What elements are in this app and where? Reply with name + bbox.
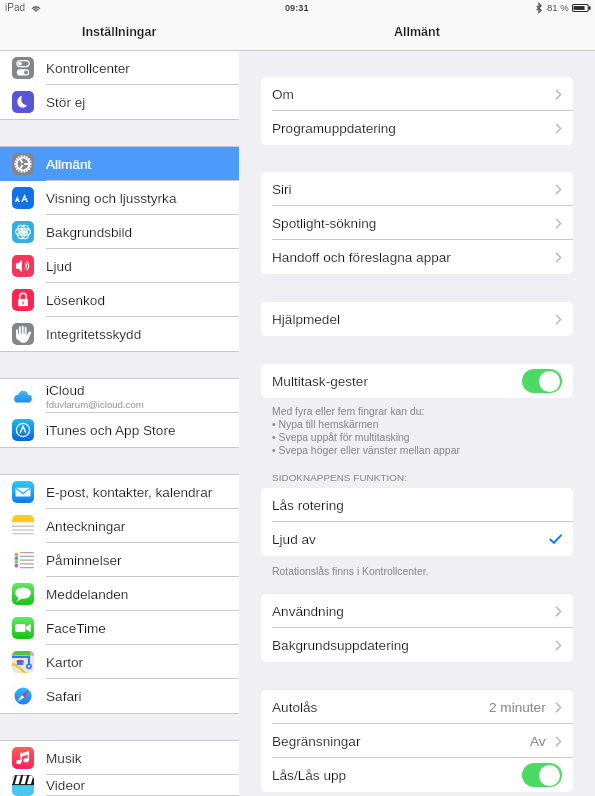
staticText: 2 minuter bbox=[489, 700, 546, 715]
staticText: Anteckningar bbox=[46, 519, 126, 534]
staticText: Stör ej bbox=[46, 95, 86, 110]
button[interactable]: Allmänt bbox=[0, 147, 239, 181]
staticText: Hjälpmedel bbox=[272, 312, 341, 327]
staticText: Lås rotering bbox=[272, 498, 344, 513]
button[interactable]: Påminnelser bbox=[0, 543, 239, 577]
button[interactable]: iCloud bbox=[0, 379, 239, 413]
staticText: Autolås bbox=[272, 700, 318, 715]
button[interactable]: Lås/Lås upp bbox=[261, 758, 573, 792]
button[interactable]: Siri bbox=[261, 172, 573, 206]
button[interactable]: Videor bbox=[0, 775, 239, 796]
staticText: Påminnelser bbox=[46, 553, 122, 568]
button[interactable]: Kontrollcenter bbox=[0, 51, 239, 85]
staticText: Med fyra eller fem fingrar kan du: bbox=[272, 406, 425, 418]
button[interactable]: Anteckningar bbox=[0, 509, 239, 543]
staticText: Lås/Lås upp bbox=[272, 768, 347, 783]
staticText: iPad bbox=[5, 2, 26, 13]
staticText: Programuppdatering bbox=[272, 121, 396, 136]
staticText: Inställningar bbox=[82, 25, 157, 39]
staticText: Allmänt bbox=[46, 157, 92, 172]
staticText: • Svepa uppåt för multitasking bbox=[272, 432, 410, 444]
staticText: Musik bbox=[46, 751, 82, 766]
staticText: Av bbox=[530, 734, 546, 749]
button[interactable]: Multitask-gester bbox=[261, 364, 573, 398]
button[interactable]: iTunes och App Store bbox=[0, 413, 239, 447]
button[interactable]: Kartor bbox=[0, 645, 239, 679]
staticText: SIDOKNAPPENS FUNKTION: bbox=[272, 472, 408, 483]
staticText: Bakgrundsbild bbox=[46, 225, 133, 240]
staticText: • Nypa till hemskärmen bbox=[272, 419, 379, 431]
button[interactable]: Användning bbox=[261, 594, 573, 628]
button[interactable]: Programuppdatering bbox=[261, 111, 573, 145]
staticText: Siri bbox=[272, 182, 292, 197]
button[interactable]: Lösenkod bbox=[0, 283, 239, 317]
staticText: 81 % bbox=[547, 2, 569, 13]
staticText: Kontrollcenter bbox=[46, 61, 130, 76]
button[interactable]: Safari bbox=[0, 679, 239, 713]
button[interactable]: E-post, kontakter, kalendrar bbox=[0, 475, 239, 509]
button[interactable]: Meddelanden bbox=[0, 577, 239, 611]
button[interactable]: Ljud av bbox=[261, 522, 573, 556]
button[interactable]: Bakgrundsbild bbox=[0, 215, 239, 249]
staticText: iCloud bbox=[46, 383, 85, 398]
button[interactable]: Lås/Lås upp bbox=[522, 763, 562, 787]
staticText: Om bbox=[272, 87, 294, 102]
staticText: iTunes och App Store bbox=[46, 423, 176, 438]
button[interactable]: Autolås bbox=[261, 690, 573, 724]
button[interactable]: Lås rotering bbox=[261, 488, 573, 522]
staticText: Integritetsskydd bbox=[46, 327, 142, 342]
staticText: Allmänt bbox=[394, 25, 440, 39]
staticText: Begränsningar bbox=[272, 734, 361, 749]
staticText: Visning och ljusstyrka bbox=[46, 191, 177, 206]
staticText: Lösenkod bbox=[46, 293, 105, 308]
staticText: Ljud av bbox=[272, 532, 316, 547]
button[interactable]: Bakgrundsuppdatering bbox=[261, 628, 573, 662]
staticText: FaceTime bbox=[46, 621, 106, 636]
staticText: Ljud bbox=[46, 259, 72, 274]
button[interactable]: Spotlight-sökning bbox=[261, 206, 573, 240]
button[interactable]: FaceTime bbox=[0, 611, 239, 645]
staticText: Kartor bbox=[46, 655, 84, 670]
staticText: • Svepa höger eller vänster mellan appar bbox=[272, 445, 460, 457]
button[interactable]: Om bbox=[261, 77, 573, 111]
staticText: E-post, kontakter, kalendrar bbox=[46, 485, 213, 500]
button[interactable]: Ljud bbox=[0, 249, 239, 283]
staticText: Multitask-gester bbox=[272, 374, 368, 389]
staticText: 09:31 bbox=[285, 3, 309, 13]
button[interactable]: Stör ej bbox=[0, 85, 239, 119]
staticText: Safari bbox=[46, 689, 82, 704]
button[interactable]: Integritetsskydd bbox=[0, 317, 239, 351]
button[interactable]: Begränsningar bbox=[261, 724, 573, 758]
staticText: Handoff och föreslagna appar bbox=[272, 250, 451, 265]
staticText: Videor bbox=[46, 778, 86, 793]
staticText: Meddelanden bbox=[46, 587, 129, 602]
staticText: Spotlight-sökning bbox=[272, 216, 377, 231]
staticText: Rotationslås finns i Kontrollcenter. bbox=[272, 566, 429, 578]
staticText: fduvlarum@icloud.com bbox=[46, 399, 144, 410]
staticText: Användning bbox=[272, 604, 344, 619]
staticText: Bakgrundsuppdatering bbox=[272, 638, 409, 653]
button[interactable]: Handoff och föreslagna appar bbox=[261, 240, 573, 274]
button[interactable]: Multitask-gester bbox=[522, 369, 562, 393]
button[interactable]: Visning och ljusstyrka bbox=[0, 181, 239, 215]
button[interactable]: Hjälpmedel bbox=[261, 302, 573, 336]
button[interactable]: Musik bbox=[0, 741, 239, 775]
